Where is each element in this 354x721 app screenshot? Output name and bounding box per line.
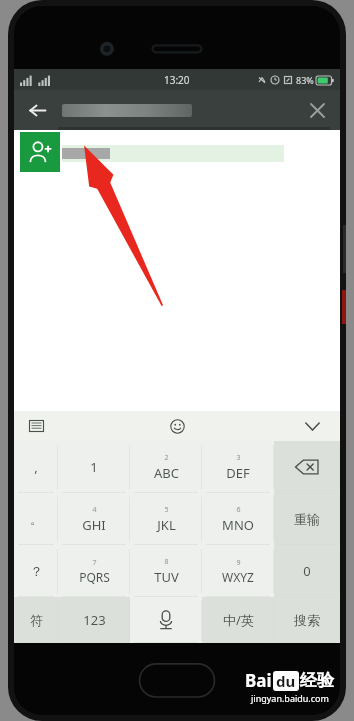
button[interactable]: 1 — [58, 441, 130, 493]
staticText: , — [34, 458, 38, 476]
staticText: 6 — [236, 505, 241, 515]
button[interactable]: 5 — [130, 493, 202, 545]
staticText: 7 — [92, 558, 97, 568]
staticText: ？ — [30, 563, 43, 579]
staticText: 4 — [92, 505, 97, 515]
staticText: 123 — [83, 611, 106, 629]
button[interactable]: Back — [18, 91, 56, 129]
button[interactable]: 0 — [274, 545, 340, 597]
staticText: 重输 — [294, 511, 320, 527]
staticText: 13:20 — [164, 73, 190, 87]
button[interactable]: 123 — [58, 597, 130, 643]
staticText: 经验 — [300, 670, 334, 691]
button[interactable] — [62, 104, 192, 117]
staticText: 1 — [90, 458, 98, 476]
button[interactable]: Emoji — [163, 412, 191, 440]
staticText: DEF — [226, 464, 250, 482]
staticText: 搜索 — [294, 612, 320, 628]
staticText: Bai — [245, 669, 272, 692]
button[interactable]: 。 — [14, 493, 58, 545]
button[interactable]: 2 — [130, 441, 202, 493]
staticText: 中/英 — [223, 611, 254, 629]
staticText: du — [276, 671, 296, 691]
button[interactable]: 8 — [130, 545, 202, 597]
staticText: TUV — [154, 568, 179, 586]
staticText: 3 — [236, 453, 241, 463]
staticText: jingyan.baidu.com — [251, 692, 329, 704]
button[interactable]: 符 — [14, 597, 58, 643]
staticText: GHI — [82, 516, 106, 534]
staticText: 9 — [236, 558, 241, 568]
staticText: 符 — [30, 612, 43, 628]
staticText: 8 — [164, 557, 169, 567]
button[interactable]: Keyboard layout — [22, 412, 50, 440]
staticText: 0 — [303, 562, 311, 580]
staticText: 5 — [164, 505, 169, 515]
button[interactable]: 9 — [202, 545, 274, 597]
button[interactable]: 6 — [202, 493, 274, 545]
button[interactable]: Add contact — [14, 130, 340, 174]
staticText: JKL — [157, 516, 176, 534]
button[interactable]: , — [14, 441, 58, 493]
staticText: ABC — [154, 464, 179, 482]
button[interactable]: 4 — [58, 493, 130, 545]
button[interactable]: 7 — [58, 545, 130, 597]
button[interactable]: ？ — [14, 545, 58, 597]
staticText: PQRS — [79, 569, 110, 585]
button[interactable]: Clear — [298, 91, 336, 129]
button[interactable]: Voice input — [130, 597, 202, 643]
staticText: 2 — [164, 453, 169, 463]
staticText: WXYZ — [222, 569, 254, 585]
other: Add contact — [20, 132, 60, 172]
button[interactable]: Backspace — [274, 441, 340, 493]
button[interactable]: 搜索 — [274, 597, 340, 643]
staticText: 83% — [296, 74, 314, 86]
staticText: 。 — [30, 511, 43, 527]
button[interactable]: 中/英 — [202, 597, 274, 643]
button[interactable]: 重输 — [274, 493, 340, 545]
staticText: MNO — [222, 516, 254, 534]
button[interactable]: Hide keyboard — [298, 412, 326, 440]
button[interactable]: 3 — [202, 441, 274, 493]
